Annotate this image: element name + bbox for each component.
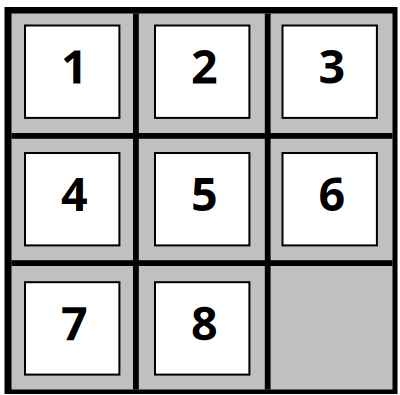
staticText: 7: [61, 291, 88, 353]
button[interactable]: Tile 6: [282, 153, 377, 245]
staticText: 5: [191, 162, 218, 224]
button[interactable]: Tile 8: [155, 282, 249, 375]
staticText: 1: [61, 34, 88, 96]
staticText: 3: [318, 34, 345, 96]
staticText: 2: [191, 34, 218, 96]
button[interactable]: Tile 5: [155, 153, 249, 245]
staticText: 8: [191, 291, 218, 353]
button[interactable]: Tile 1: [25, 25, 119, 118]
staticText: 6: [318, 162, 345, 224]
button[interactable]: Tile 2: [155, 25, 249, 118]
button[interactable]: Tile 3: [282, 25, 377, 118]
staticText: 4: [61, 162, 88, 224]
button[interactable]: Tile 7: [25, 282, 119, 375]
button[interactable]: Tile 4: [25, 153, 119, 245]
